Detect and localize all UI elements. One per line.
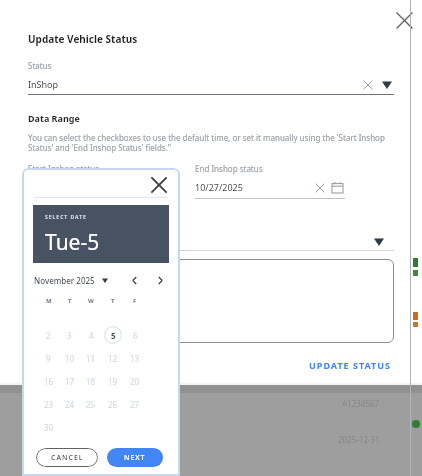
staticText: License Expiration Date:	[52, 433, 338, 445]
staticText: 17	[65, 376, 75, 387]
button[interactable]: 10	[59, 349, 80, 367]
staticText: 20	[130, 376, 140, 387]
button[interactable]: Open calendar	[329, 179, 345, 195]
button[interactable]: 26	[102, 395, 124, 413]
button[interactable]: Close date picker	[148, 174, 170, 196]
button[interactable]: CANCEL	[36, 448, 98, 467]
staticText: A1234567	[342, 398, 380, 409]
staticText: 10/27/2025	[195, 181, 313, 193]
button[interactable]: November 2025	[34, 273, 112, 287]
staticText: 16	[44, 376, 54, 387]
staticText: M	[46, 297, 52, 305]
staticText: 3	[67, 330, 72, 341]
staticText: UPDATE STATUS	[309, 359, 392, 371]
staticText: 25	[86, 399, 96, 410]
staticText: 30	[44, 422, 54, 433]
staticText: 4	[89, 330, 94, 341]
button[interactable]: 13	[124, 349, 146, 367]
button[interactable]: 27	[124, 395, 146, 413]
staticText: Data Range	[28, 112, 80, 124]
button[interactable]: 9	[38, 349, 59, 367]
staticText: 26	[108, 399, 118, 410]
staticText: 13	[130, 353, 140, 364]
staticText: Update Vehicle Status	[28, 32, 138, 46]
button[interactable]: 6	[124, 326, 146, 344]
staticText: 6	[133, 330, 138, 341]
button[interactable]: 3	[59, 326, 80, 344]
staticText: 11	[86, 353, 96, 364]
button[interactable]: 19	[102, 372, 124, 390]
button[interactable]: Open calendar	[162, 179, 178, 195]
button[interactable]: UPDATE STATUS	[307, 357, 394, 373]
staticText: 18	[86, 376, 96, 387]
button[interactable]: Expand	[372, 234, 386, 248]
staticText: 23	[44, 399, 54, 410]
staticText: F	[133, 297, 137, 305]
button[interactable]: Clear Start Inshop status	[146, 181, 159, 194]
button[interactable]: 23	[38, 395, 59, 413]
staticText: November 2025	[34, 275, 95, 286]
button[interactable]: 20	[124, 372, 146, 390]
button[interactable]: Clear status	[361, 78, 374, 91]
button[interactable]: 18	[80, 372, 102, 390]
staticText: W	[88, 297, 94, 305]
button[interactable]: 5	[102, 326, 124, 344]
staticText: 27	[130, 399, 140, 410]
staticText: NEXT	[124, 453, 146, 463]
staticText: 24	[65, 399, 75, 410]
button[interactable]: 25	[80, 395, 102, 413]
button[interactable]: 11	[80, 349, 102, 367]
staticText: Start Inshop status	[28, 163, 100, 174]
staticText: Status	[28, 60, 52, 71]
button[interactable]: 16	[38, 372, 59, 390]
staticText: 19	[108, 376, 118, 387]
button[interactable]: Close	[392, 8, 416, 32]
staticText: T	[111, 297, 115, 305]
button[interactable]: Next month	[152, 272, 168, 288]
staticText: 9	[46, 353, 51, 364]
staticText: Tue-5	[45, 228, 100, 257]
button[interactable]: 24	[59, 395, 80, 413]
staticText: 12	[108, 353, 118, 364]
staticText: Driver License ID:	[52, 397, 342, 409]
staticText: CANCEL	[51, 453, 84, 463]
staticText: 5	[111, 330, 116, 341]
button[interactable]	[28, 259, 394, 343]
button[interactable]: 12	[102, 349, 124, 367]
button[interactable]: 4	[80, 326, 102, 344]
staticText: You can select the checkboxes to use the…	[28, 132, 394, 154]
button[interactable]: Previous month	[126, 272, 142, 288]
button[interactable]: NEXT	[107, 448, 163, 467]
staticText: T	[68, 297, 72, 305]
staticText: 10	[65, 353, 75, 364]
button[interactable]: Clear End Inshop status	[313, 181, 326, 194]
button[interactable]: SELECT DATE	[33, 205, 169, 263]
button[interactable]: 17	[59, 372, 80, 390]
staticText: 2	[46, 330, 51, 341]
button[interactable]: 30	[38, 418, 59, 436]
button[interactable]: Open status dropdown	[380, 77, 394, 91]
button[interactable]: 2	[38, 326, 59, 344]
staticText: InShop	[28, 78, 361, 90]
staticText: Not Set	[33, 211, 61, 222]
staticText: SELECT DATE	[45, 214, 87, 221]
staticText: End Inshop status	[195, 163, 263, 174]
staticText: 2025-12-31	[338, 434, 380, 445]
